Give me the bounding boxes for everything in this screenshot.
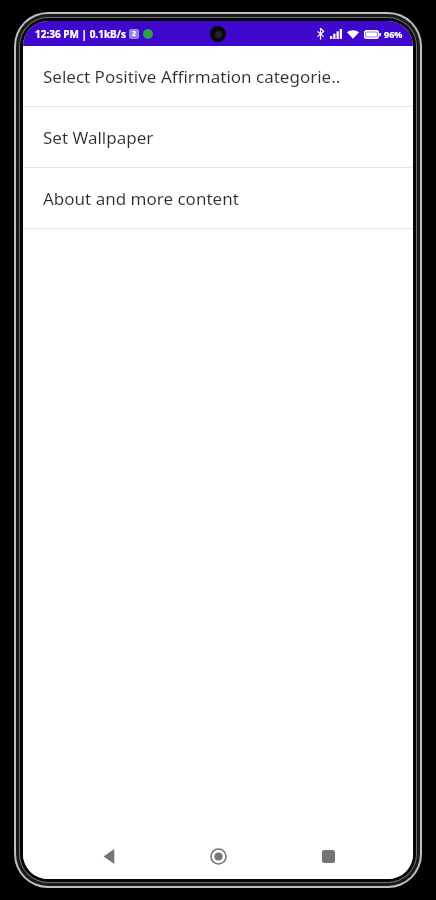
staticText: 96%: [384, 28, 403, 40]
staticText: 2: [132, 29, 137, 39]
button[interactable]: About and more content: [23, 168, 413, 228]
button[interactable]: Recent apps: [304, 833, 352, 879]
button[interactable]: Set Wallpaper: [23, 107, 413, 167]
button[interactable]: Home: [194, 833, 242, 879]
staticText: Set Wallpaper: [43, 126, 154, 149]
staticText: Select Positive Affirmation categorie..: [43, 65, 341, 88]
staticText: About and more content: [43, 187, 239, 210]
staticText: 12:36 PM | 0.1kB/s: [35, 27, 126, 41]
button[interactable]: Select Positive Affirmation categorie..: [23, 46, 413, 106]
button[interactable]: Back: [85, 833, 133, 879]
